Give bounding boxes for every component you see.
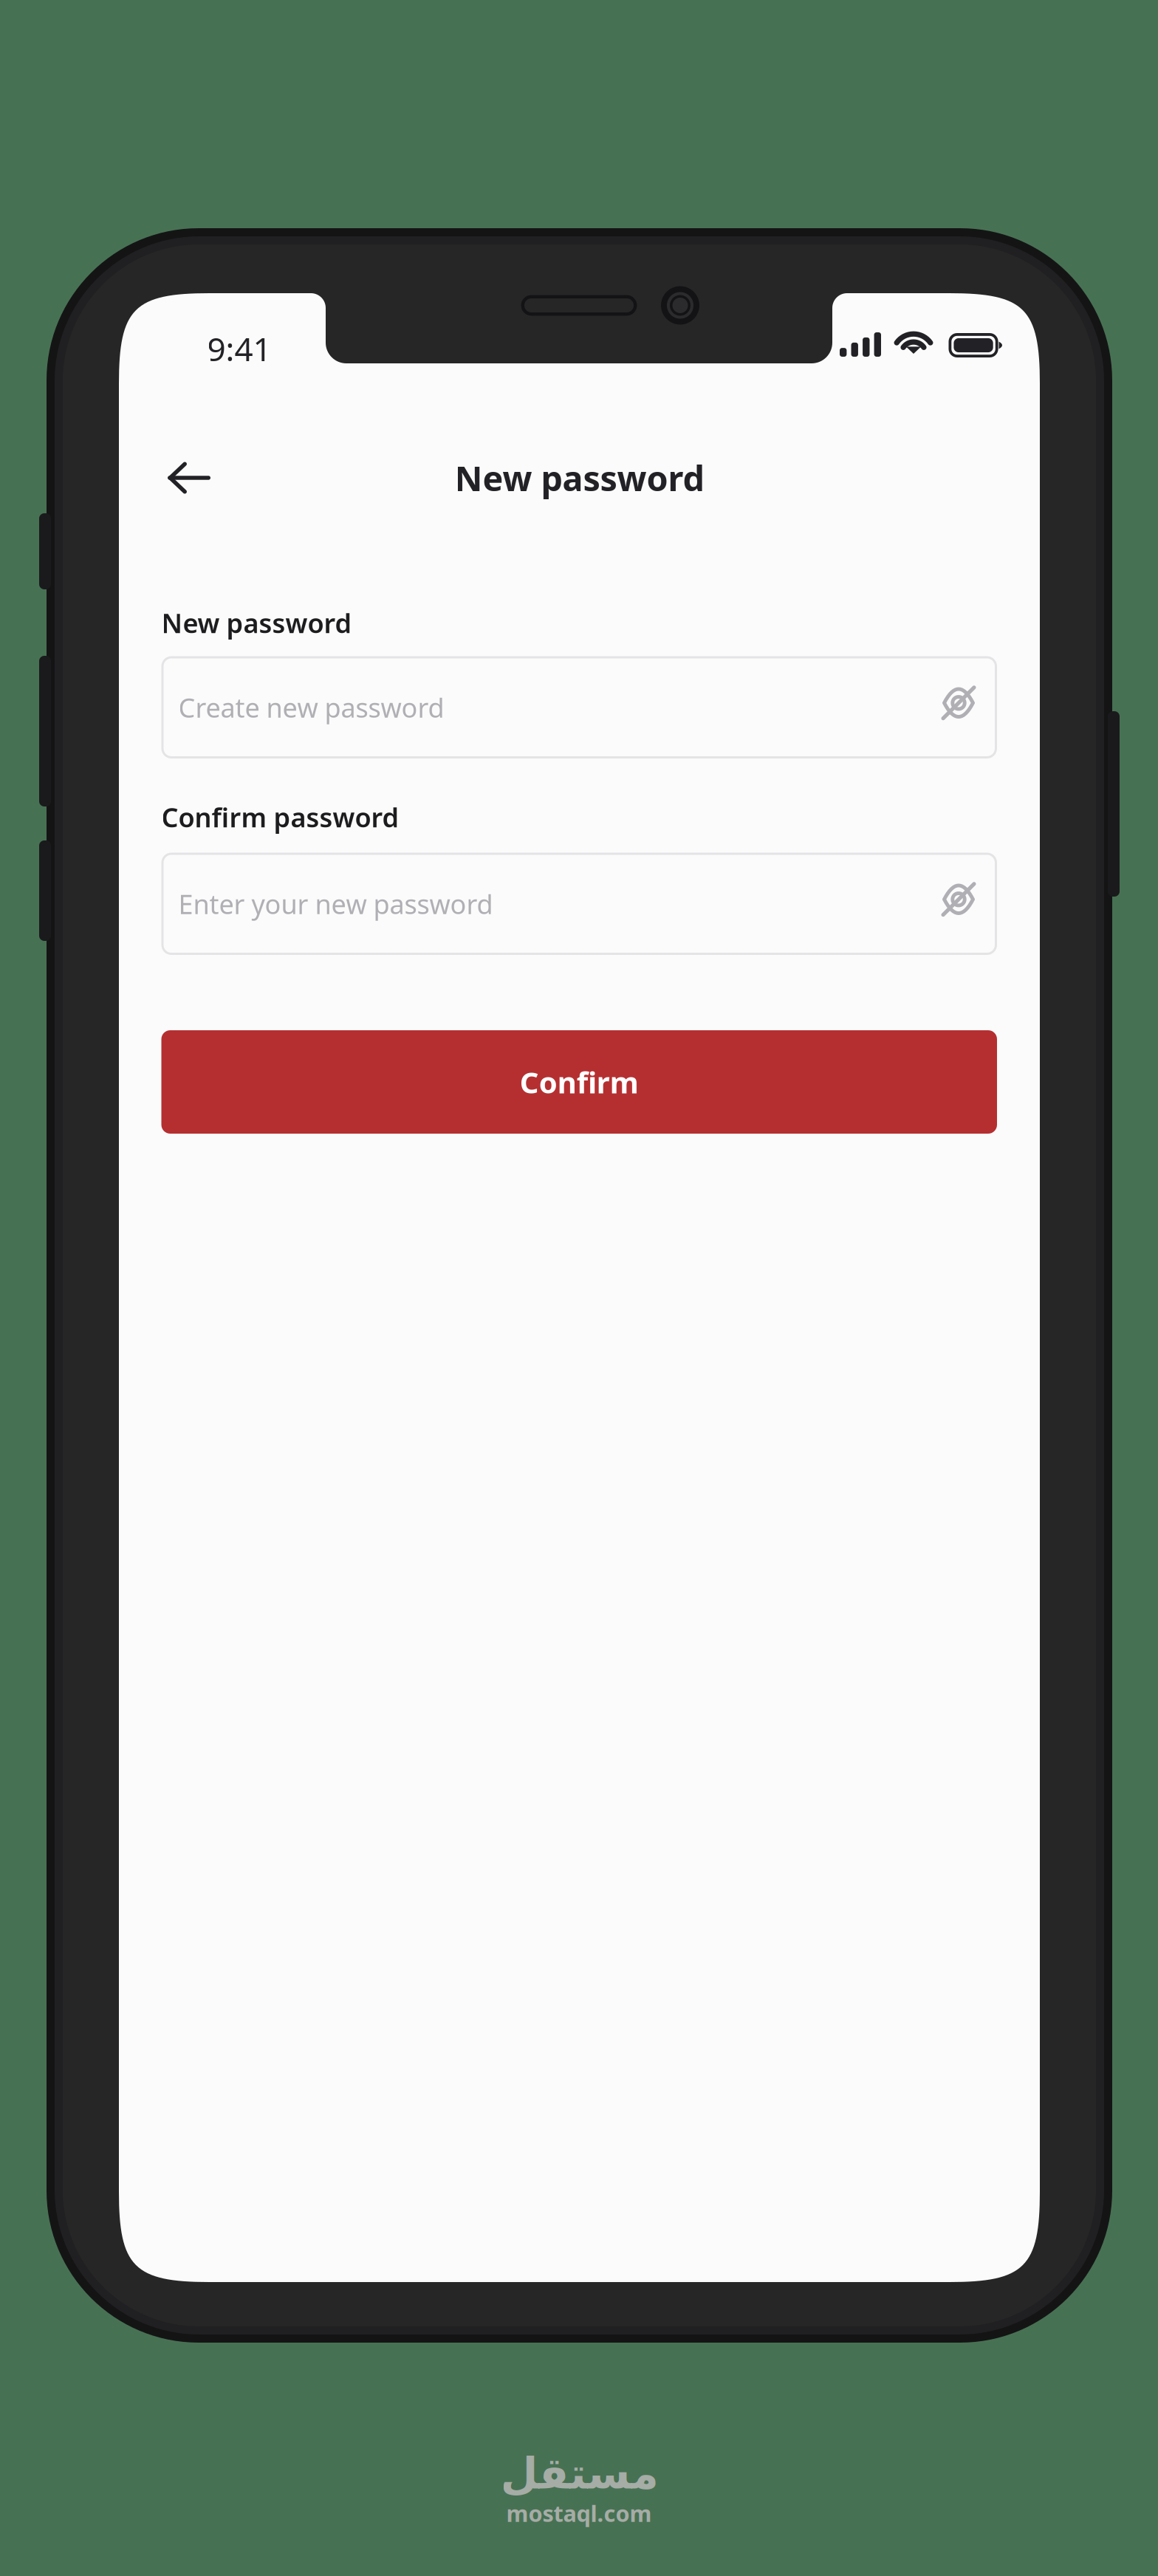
staticText: 9:41: [207, 327, 271, 370]
staticText: New password: [161, 605, 352, 641]
button[interactable]: Show password: [920, 656, 997, 758]
button[interactable]: Back: [145, 439, 233, 516]
staticText: Confirm: [520, 1062, 639, 1102]
staticText: New password: [455, 455, 704, 501]
staticText: Create new password: [178, 690, 444, 725]
staticText: Enter your new password: [178, 886, 493, 921]
button[interactable]: Confirm: [161, 1030, 997, 1134]
staticText: مستقل: [500, 2449, 658, 2498]
staticText: Confirm password: [161, 799, 399, 835]
button[interactable]: Show password: [920, 853, 997, 955]
staticText: mostaql.com: [506, 2498, 652, 2528]
